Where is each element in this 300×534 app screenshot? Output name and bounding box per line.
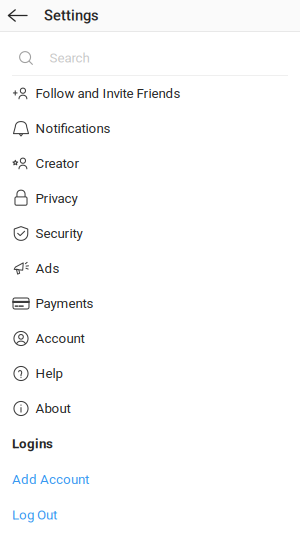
button[interactable]: Log Out [0,497,300,533]
button[interactable]: Search [0,32,300,76]
staticText: About [35,401,70,416]
button[interactable]: Follow and Invite Friends [0,76,300,111]
button[interactable]: Ads [0,251,300,286]
button[interactable]: Creator [0,146,300,181]
button[interactable]: Help [0,356,300,391]
staticText: Payments [35,296,93,311]
staticText: Settings [44,7,99,24]
staticText: Notifications [35,121,110,136]
staticText: Account [35,331,84,346]
button[interactable]: Add Account [0,462,300,497]
button[interactable]: Back [4,0,31,31]
staticText: Help [35,366,62,381]
staticText: Search [49,50,89,66]
button[interactable]: Payments [0,286,300,321]
staticText: Logins [12,436,53,452]
button[interactable]: About [0,391,300,426]
staticText: Log Out [12,507,57,523]
staticText: Ads [35,261,59,276]
button[interactable]: Notifications [0,111,300,146]
button[interactable]: Security [0,216,300,251]
staticText: Creator [35,156,79,171]
staticText: Privacy [35,191,77,206]
staticText: Follow and Invite Friends [35,86,180,101]
staticText: Security [35,226,82,241]
staticText: Add Account [12,472,89,487]
button[interactable]: Account [0,321,300,356]
button[interactable]: Privacy [0,181,300,216]
